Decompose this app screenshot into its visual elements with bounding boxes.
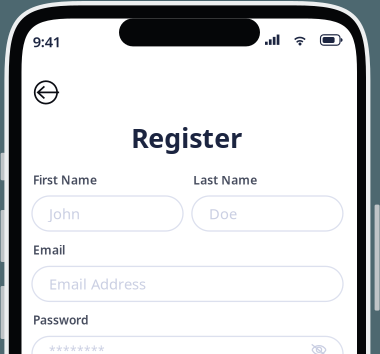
staticText: Password: [33, 312, 89, 328]
button[interactable]: Doe: [192, 196, 343, 231]
staticText: Register: [131, 120, 242, 155]
staticText: Last Name: [193, 172, 257, 188]
staticText: Doe: [209, 204, 237, 223]
staticText: Email: [33, 242, 65, 258]
staticText: ********: [49, 343, 105, 354]
staticText: 9:41: [33, 32, 61, 51]
button[interactable]: Back: [34, 81, 60, 104]
button[interactable]: John: [32, 196, 183, 231]
staticText: Email Address: [49, 274, 146, 294]
staticText: First Name: [33, 172, 97, 188]
button[interactable]: ********: [32, 336, 343, 354]
staticText: John: [49, 204, 80, 223]
button[interactable]: Email Address: [32, 266, 343, 301]
